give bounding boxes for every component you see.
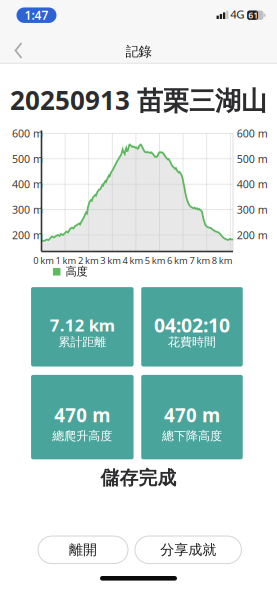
staticText: 400 m [12,177,43,191]
staticText: 3 km [100,254,121,267]
button[interactable]: Return to call [16,7,56,23]
staticText: 記錄 [125,43,151,60]
staticText: 4G [230,6,244,22]
staticText: 600 m [12,126,43,141]
staticText: 累計距離 [58,334,106,349]
staticText: 2 km [78,254,99,267]
staticText: 7.12 km [50,314,115,336]
staticText: 總爬升高度 [52,428,112,443]
staticText: 1:47 [24,7,48,23]
staticText: 400 m [237,177,268,191]
staticText: 5 km [145,254,166,267]
staticText: 300 m [237,202,268,217]
staticText: 470 m [54,402,110,428]
staticText: 離開 [69,541,97,559]
staticText: 總下降高度 [162,428,222,443]
staticText: 470 m [164,402,220,428]
staticText: 600 m [237,126,268,141]
staticText: 1 km [56,254,77,267]
staticText: 7 km [189,254,210,267]
staticText: 0 km [33,254,54,267]
button[interactable]: Back [6,34,32,67]
staticText: 300 m [12,202,43,217]
staticText: 500 m [237,151,268,166]
staticText: 花費時間 [168,334,216,349]
staticText: 4 km [122,254,143,267]
staticText: 高度 [65,264,87,279]
staticText: 6 km [167,254,188,267]
staticText: 500 m [12,151,43,166]
staticText: 分享成就 [160,541,216,559]
staticText: 04:02:10 [154,312,230,338]
button[interactable]: 分享成就 [135,536,241,563]
staticText: 20250913 苗栗三湖山 [10,82,267,118]
staticText: 儲存完成 [100,466,176,490]
staticText: 61 [248,9,258,21]
staticText: 200 m [237,228,268,242]
button[interactable]: 離開 [38,536,128,563]
staticText: 200 m [12,228,43,242]
staticText: 8 km [212,254,233,267]
